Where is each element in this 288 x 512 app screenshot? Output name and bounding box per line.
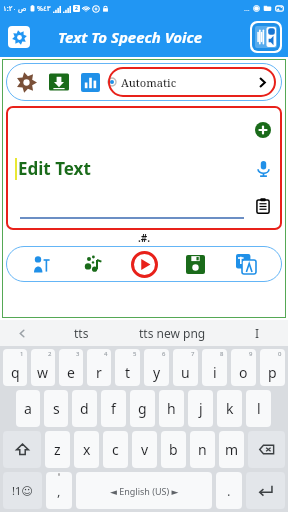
button[interactable]: App icon	[252, 23, 280, 51]
button[interactable]: Add	[252, 119, 274, 141]
button[interactable]: 8	[202, 349, 227, 386]
button[interactable]: v	[132, 431, 157, 468]
staticText: z	[54, 440, 61, 459]
staticText: d	[80, 399, 89, 418]
staticText: I	[255, 325, 260, 341]
button[interactable]: 4	[87, 349, 111, 386]
staticText: r	[96, 363, 102, 382]
staticText: %٤٣	[37, 4, 51, 14]
button[interactable]: Paste	[252, 195, 274, 217]
staticText: tts	[74, 325, 89, 341]
staticText: 2	[75, 5, 78, 12]
button[interactable]: g	[130, 390, 155, 427]
button[interactable]: 0	[260, 349, 285, 386]
staticText: q	[11, 363, 20, 382]
button[interactable]: 6	[144, 349, 169, 386]
button[interactable]: j	[188, 390, 213, 427]
button[interactable]: f	[101, 390, 126, 427]
staticText: 9	[249, 350, 253, 358]
button[interactable]: Music	[79, 250, 107, 278]
button[interactable]: !1☺	[3, 472, 42, 509]
button[interactable]: Settings	[12, 68, 40, 96]
button[interactable]: h	[159, 390, 184, 427]
button[interactable]: x	[74, 431, 99, 468]
staticText: 7	[191, 350, 195, 358]
staticText: 0	[278, 350, 282, 358]
staticText: .#.	[138, 231, 151, 245]
staticText: p	[268, 363, 277, 382]
staticText: j	[199, 399, 203, 418]
staticText: .	[227, 482, 231, 500]
staticText: m	[225, 440, 239, 459]
staticText: o	[239, 363, 248, 382]
button[interactable]: m	[219, 431, 244, 468]
button[interactable]: Statistics	[78, 70, 102, 94]
staticText: 1	[20, 350, 24, 358]
button[interactable]: 9	[231, 349, 256, 386]
staticText: v	[141, 440, 149, 459]
staticText: u	[181, 363, 190, 382]
button[interactable]: l	[246, 390, 271, 427]
button[interactable]: k	[217, 390, 242, 427]
staticText: 8	[220, 350, 224, 358]
staticText: 5	[133, 350, 137, 358]
button[interactable]: Play	[129, 249, 159, 279]
button[interactable]: 7	[173, 349, 198, 386]
staticText: c	[112, 440, 119, 459]
staticText: t	[125, 363, 131, 382]
button[interactable]: Space	[76, 472, 212, 509]
button[interactable]: Download	[47, 70, 71, 94]
button[interactable]: .	[216, 472, 242, 509]
button[interactable]: 1	[3, 349, 27, 386]
button[interactable]: c	[103, 431, 128, 468]
staticText: 6	[162, 350, 166, 358]
staticText: ◄ English (US) ►	[110, 485, 179, 497]
staticText: a	[24, 399, 32, 418]
staticText: f	[111, 399, 116, 418]
button[interactable]: Shift	[3, 431, 41, 468]
button[interactable]: Enter	[246, 472, 285, 509]
button[interactable]: tts	[44, 320, 118, 346]
staticText: ,	[57, 482, 61, 500]
staticText: Edit Text	[18, 157, 91, 180]
button[interactable]: Voice input	[252, 157, 274, 179]
button[interactable]: Save	[181, 250, 209, 278]
staticText: w	[37, 363, 49, 382]
button[interactable]: I	[226, 320, 288, 346]
button[interactable]: d	[72, 390, 97, 427]
staticText: n	[198, 440, 207, 459]
staticText: k	[226, 399, 234, 418]
button[interactable]: Backspace	[248, 431, 285, 468]
button[interactable]: b	[161, 431, 186, 468]
button[interactable]: 3	[59, 349, 83, 386]
staticText: s	[53, 399, 60, 418]
staticText: tts new png	[139, 325, 206, 341]
button[interactable]: n	[190, 431, 215, 468]
button[interactable]: Translate	[232, 250, 260, 278]
staticText: l	[257, 399, 261, 418]
button[interactable]: Automatic	[108, 67, 276, 97]
button[interactable]: Settings	[8, 26, 30, 48]
staticText: 2	[48, 350, 52, 358]
staticText: 3	[76, 350, 80, 358]
staticText: g	[138, 399, 147, 418]
staticText: x	[83, 440, 91, 459]
button[interactable]: ,	[46, 472, 72, 509]
staticText: e	[67, 363, 75, 382]
staticText: ...	[244, 4, 250, 14]
staticText: Text To Speech Voice	[58, 27, 203, 47]
button[interactable]: 2	[31, 349, 55, 386]
staticText: y	[153, 363, 161, 382]
staticText: b	[169, 440, 178, 459]
staticText: Automatic	[121, 75, 177, 90]
button[interactable]: Previous suggestions	[0, 320, 44, 346]
button[interactable]: s	[44, 390, 68, 427]
staticText: ص ١:٢٠	[3, 4, 27, 14]
button[interactable]: 5	[115, 349, 140, 386]
staticText: h	[167, 399, 176, 418]
button[interactable]: tts new png	[118, 320, 226, 346]
button[interactable]: z	[45, 431, 70, 468]
button[interactable]: Speaker	[28, 250, 56, 278]
button[interactable]: a	[16, 390, 40, 427]
staticText: i	[213, 363, 217, 382]
